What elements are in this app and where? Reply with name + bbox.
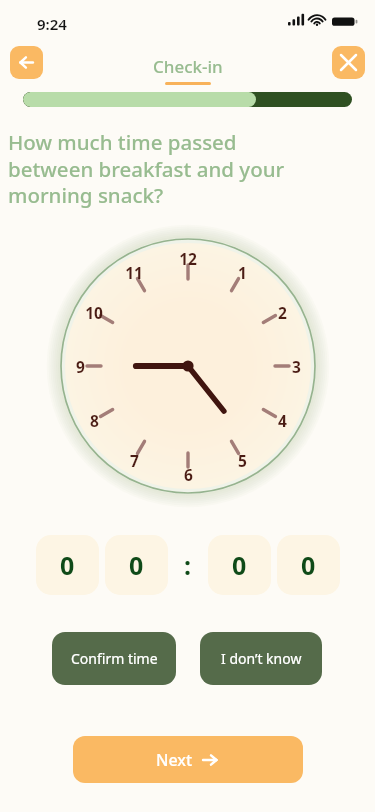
staticText: Check-in bbox=[153, 55, 223, 78]
staticText: 2 bbox=[278, 302, 287, 323]
staticText: 10 bbox=[85, 302, 103, 323]
button[interactable]: Back bbox=[10, 46, 43, 79]
staticText: 0 bbox=[60, 548, 75, 582]
button[interactable]: Next bbox=[73, 736, 303, 783]
staticText: 9:24 bbox=[37, 14, 67, 34]
staticText: 1 bbox=[238, 262, 247, 283]
staticText: : bbox=[184, 548, 192, 582]
staticText: 7 bbox=[130, 450, 139, 471]
staticText: Confirm time bbox=[71, 649, 158, 668]
staticText: I don’t know bbox=[221, 649, 302, 668]
staticText: 0 bbox=[232, 548, 247, 582]
staticText: Next bbox=[156, 749, 193, 771]
staticText: 8 bbox=[90, 410, 99, 431]
button[interactable]: I don’t know bbox=[200, 632, 322, 685]
staticText: 11 bbox=[125, 262, 143, 283]
button[interactable]: 0 bbox=[277, 535, 340, 595]
staticText: 9 bbox=[76, 356, 85, 377]
button[interactable]: 0 bbox=[208, 535, 271, 595]
staticText: 4 bbox=[278, 410, 287, 431]
staticText: 12 bbox=[179, 248, 197, 269]
button[interactable]: 0 bbox=[105, 535, 168, 595]
button[interactable]: 0 bbox=[36, 535, 99, 595]
staticText: 5 bbox=[238, 450, 247, 471]
staticText: 0 bbox=[129, 548, 144, 582]
staticText: 6 bbox=[184, 464, 193, 485]
staticText: How much time passed between breakfast a… bbox=[8, 128, 308, 209]
staticText: 3 bbox=[292, 356, 301, 377]
button[interactable]: Confirm time bbox=[52, 632, 176, 685]
staticText: 0 bbox=[301, 548, 316, 582]
button[interactable]: Close bbox=[332, 46, 365, 79]
